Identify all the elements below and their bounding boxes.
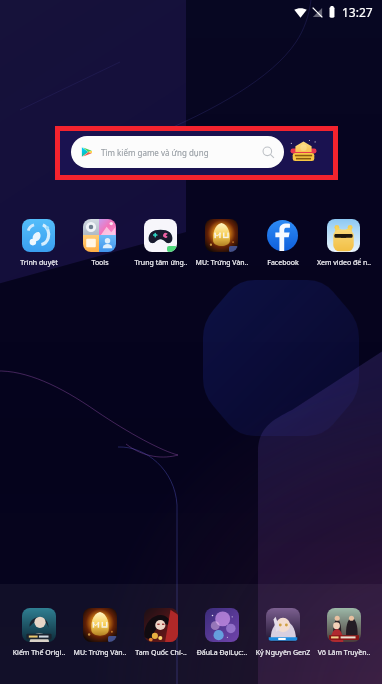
button[interactable]: Kỷ Nguyên GenZ (252, 608, 313, 658)
button[interactable]: Tools (69, 219, 130, 268)
button[interactable]: Facebook (252, 219, 313, 268)
staticText: Trung tâm ứng‥ (131, 258, 191, 268)
staticText: Kỷ Nguyên GenZ (253, 648, 313, 658)
staticText: Tam Quốc Chí-‥ (131, 648, 191, 658)
button[interactable]: Tìm kiếm game và ứng dụng (71, 136, 284, 168)
button[interactable]: Xem video để n‥ (313, 219, 374, 268)
button[interactable]: MU: Trứng Vàn‥ (191, 219, 252, 268)
button[interactable]: Games (286, 134, 320, 168)
button[interactable]: Kiếm Thế Origi‥ (8, 608, 69, 658)
staticText: Võ Lâm Truyền‥ (314, 648, 374, 658)
button[interactable]: MU: Trứng Vàn‥ (69, 608, 130, 658)
staticText: MU: Trứng Vàn‥ (192, 258, 252, 268)
staticText: ĐấuLa ĐạiLục:‥ (192, 648, 252, 658)
button[interactable]: Tam Quốc Chí-‥ (130, 608, 191, 658)
staticText: Facebook (253, 258, 313, 268)
staticText: Xem video để n‥ (314, 258, 374, 268)
button[interactable]: Võ Lâm Truyền‥ (313, 608, 374, 658)
staticText: Trình duyệt (9, 258, 69, 268)
staticText: MU: Trứng Vàn‥ (70, 648, 130, 658)
staticText: Kiếm Thế Origi‥ (9, 648, 69, 658)
button[interactable]: Trình duyệt (8, 219, 69, 268)
button[interactable]: Trung tâm ứng‥ (130, 219, 191, 268)
staticText: Tools (70, 258, 130, 268)
staticText: 13:27 (342, 4, 373, 20)
button[interactable]: ĐấuLa ĐạiLục:‥ (191, 608, 252, 658)
staticText: Tìm kiếm game và ứng dụng (101, 147, 209, 158)
